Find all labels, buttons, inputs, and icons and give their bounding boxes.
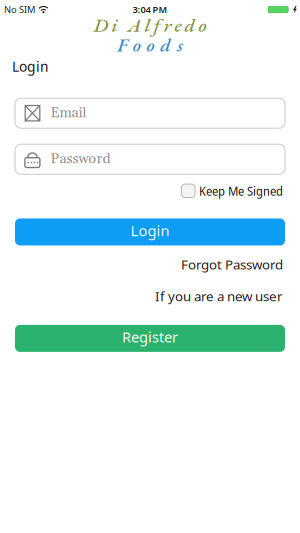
button[interactable]: Password <box>0 144 300 174</box>
staticText: f <box>153 12 160 38</box>
staticText: d <box>160 32 171 58</box>
staticText: F <box>117 32 127 58</box>
staticText: Forgot Password <box>181 255 283 273</box>
staticText: If you are a new user <box>155 287 283 305</box>
button[interactable]: Forgot Password <box>181 255 283 273</box>
button[interactable]: Email <box>0 98 300 128</box>
staticText: D <box>93 12 108 38</box>
staticText: Keep Me Signed <box>199 182 283 199</box>
staticText: l <box>144 12 150 38</box>
staticText: Email <box>50 104 86 122</box>
staticText: o <box>146 32 154 58</box>
staticText: Login <box>12 55 49 76</box>
button[interactable]: Keep Me Signed <box>181 182 283 199</box>
staticText: d <box>184 12 195 38</box>
staticText: 3:04 PM <box>132 3 167 16</box>
staticText: o <box>133 32 141 58</box>
staticText: o <box>198 12 206 38</box>
staticText: No SIM <box>4 3 35 16</box>
staticText: Register <box>122 327 178 347</box>
button[interactable]: Register <box>15 325 285 352</box>
staticText: e <box>174 12 181 38</box>
staticText: A <box>127 12 141 38</box>
button[interactable]: Login <box>15 218 285 245</box>
staticText: r <box>163 12 171 38</box>
staticText: Password <box>50 150 110 168</box>
staticText: i <box>111 12 117 38</box>
staticText: Login <box>130 221 169 240</box>
staticText: s <box>177 32 183 58</box>
